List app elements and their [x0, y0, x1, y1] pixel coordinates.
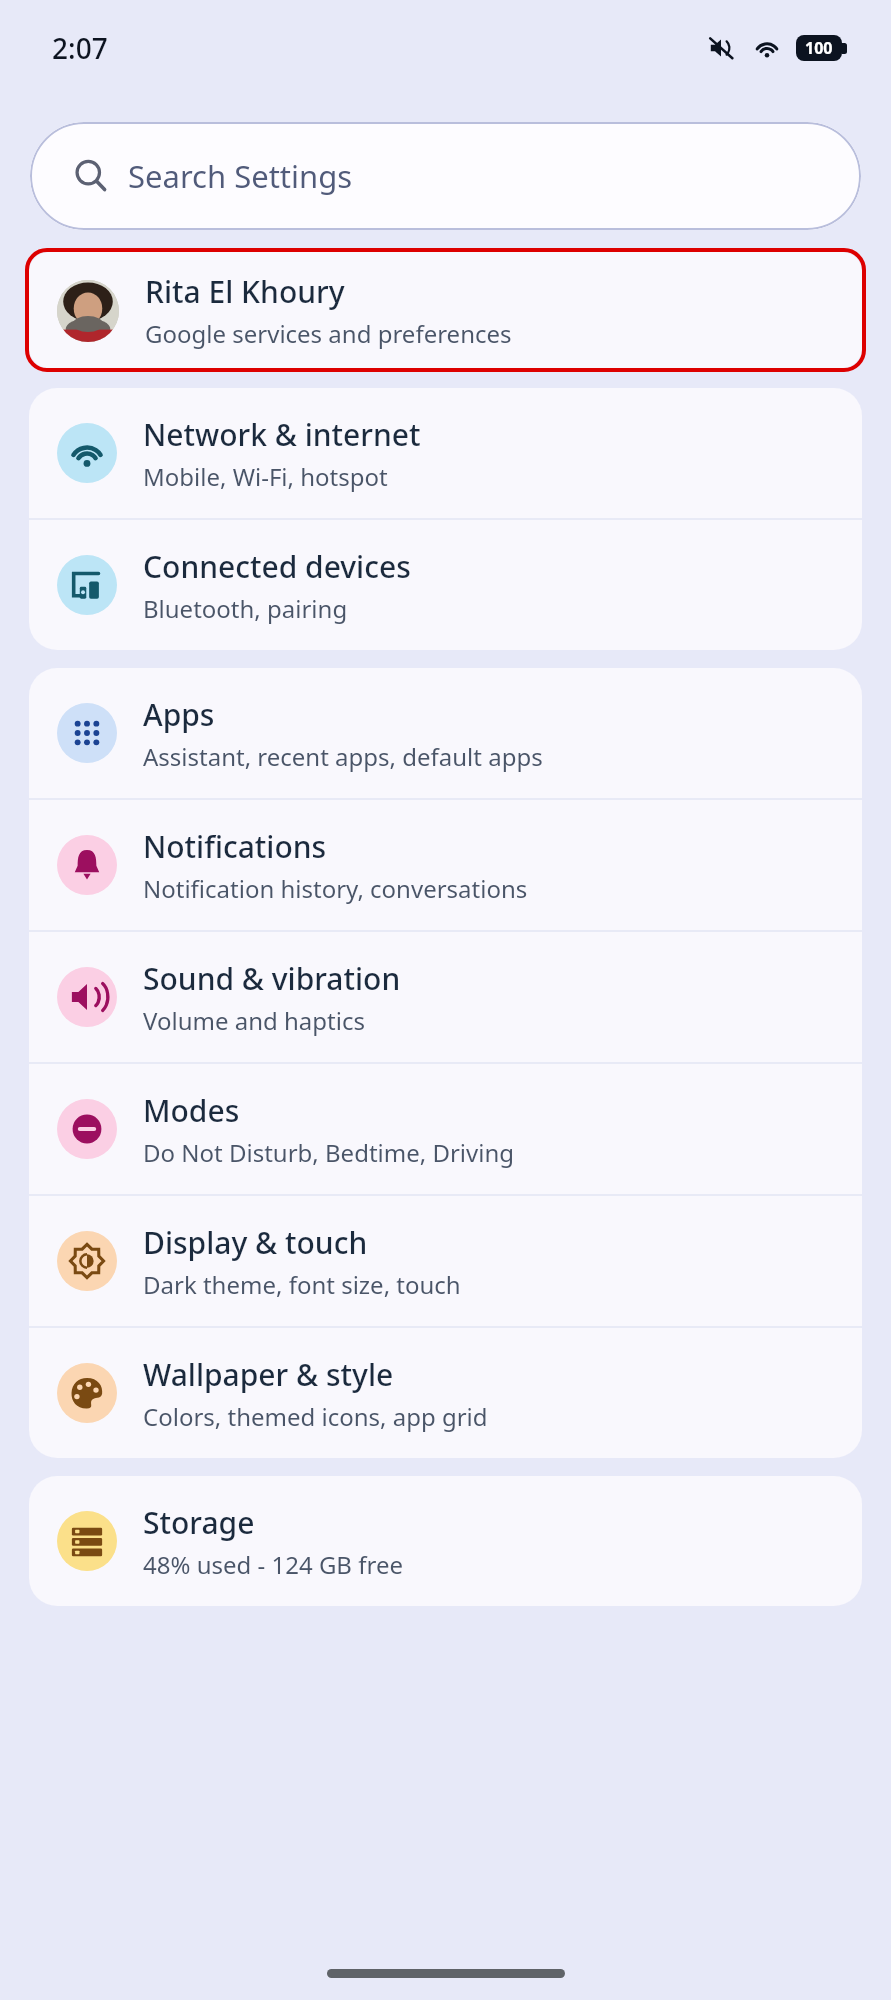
other: Notifications: [69, 847, 105, 883]
staticText: Google services and preferences: [145, 317, 512, 350]
staticText: Bluetooth, pairing: [143, 592, 348, 625]
button[interactable]: Rita El Khoury: [29, 252, 862, 368]
staticText: 100: [805, 37, 833, 59]
button[interactable]: Connected devices: [29, 520, 862, 650]
staticText: Connected devices: [143, 546, 411, 587]
staticText: Modes: [143, 1090, 240, 1131]
other: Modes: [69, 1111, 105, 1147]
staticText: 48% used - 124 GB free: [143, 1548, 403, 1581]
staticText: Dark theme, font size, touch: [143, 1268, 461, 1301]
staticText: Notification history, conversations: [143, 872, 528, 905]
staticText: Network & internet: [143, 414, 421, 455]
button[interactable]: Wi-Fi: [29, 388, 862, 518]
staticText: Colors, themed icons, app grid: [143, 1400, 488, 1433]
staticText: Assistant, recent apps, default apps: [143, 740, 543, 773]
staticText: Display & touch: [143, 1222, 368, 1263]
button[interactable]: Sound and vibration: [29, 932, 862, 1062]
button[interactable]: Display and touch: [29, 1196, 862, 1326]
staticText: Search Settings: [128, 155, 353, 197]
other: Wallpaper and style: [69, 1375, 105, 1411]
button[interactable]: Wallpaper and style: [29, 1328, 862, 1458]
button[interactable]: Storage: [29, 1476, 862, 1606]
other: Apps: [69, 715, 105, 751]
staticText: Mobile, Wi-Fi, hotspot: [143, 460, 388, 493]
staticText: Wallpaper & style: [143, 1354, 394, 1395]
staticText: 2:07: [52, 29, 108, 67]
staticText: Apps: [143, 694, 215, 735]
staticText: Notifications: [143, 826, 327, 867]
button[interactable]: Search Settings: [30, 122, 861, 230]
button[interactable]: Modes: [29, 1064, 862, 1194]
button[interactable]: Apps: [29, 668, 862, 798]
staticText: Volume and haptics: [143, 1004, 365, 1037]
staticText: Storage: [143, 1502, 255, 1543]
other: Wi-Fi: [69, 435, 105, 471]
other: Sound and vibration: [69, 979, 105, 1015]
other: Display and touch: [69, 1243, 105, 1279]
staticText: Do Not Disturb, Bedtime, Driving: [143, 1136, 514, 1169]
staticText: Sound & vibration: [143, 958, 401, 999]
other: Connected devices: [69, 567, 105, 603]
button[interactable]: Notifications: [29, 800, 862, 930]
staticText: Rita El Khoury: [145, 271, 345, 312]
other: Storage: [69, 1523, 105, 1559]
